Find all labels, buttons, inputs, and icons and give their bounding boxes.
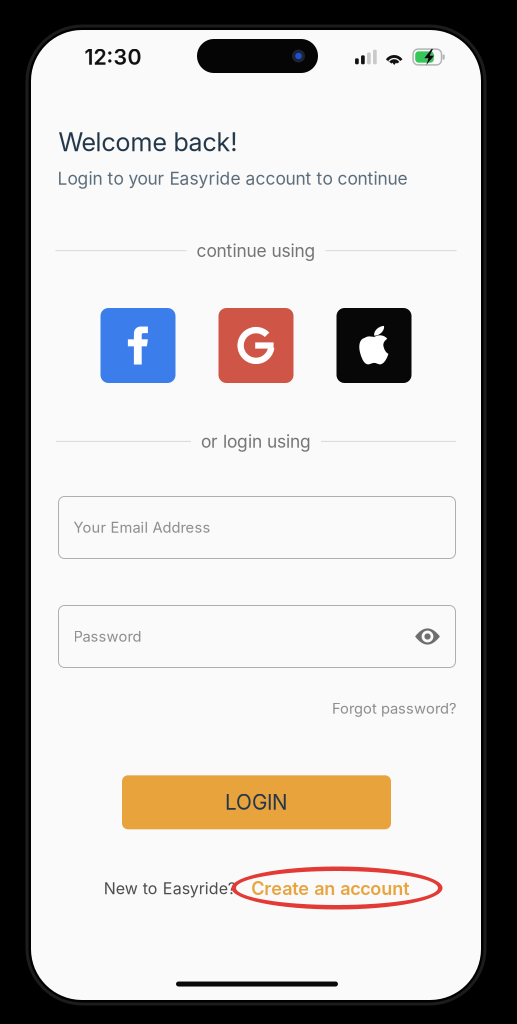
staticText: Login to your Easyride account to contin… xyxy=(57,168,407,189)
staticText: Welcome back! xyxy=(58,127,237,157)
staticText: New to Easyride? xyxy=(104,879,236,898)
button[interactable]: Forgot password? xyxy=(328,694,460,723)
button[interactable]: Create an account xyxy=(236,873,409,904)
staticText: Forgot password? xyxy=(332,700,456,717)
staticText: Your Email Address xyxy=(73,519,210,536)
button[interactable]: Continue with Apple xyxy=(336,308,411,383)
button[interactable]: Continue with Google xyxy=(218,308,293,383)
staticText: Create an account xyxy=(251,878,409,899)
staticText: 12:30 xyxy=(84,44,141,70)
staticText: Password xyxy=(73,628,141,645)
button[interactable]: Continue with Facebook xyxy=(100,308,175,383)
staticText: or login using xyxy=(201,431,311,452)
button[interactable]: LOGIN xyxy=(122,775,391,829)
button[interactable]: Show password xyxy=(409,618,445,654)
staticText: LOGIN xyxy=(225,790,288,815)
staticText: continue using xyxy=(196,240,315,261)
